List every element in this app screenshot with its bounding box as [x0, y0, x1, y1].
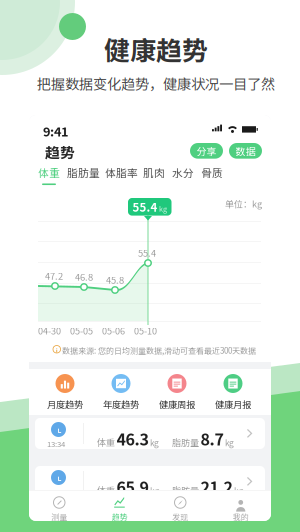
staticText: 分享 — [196, 144, 216, 158]
staticText: 体重 — [38, 165, 60, 180]
staticText: 把握数据变化趋势，健康状况一目了然 — [37, 73, 275, 94]
staticText: 09:12 — [47, 486, 65, 497]
button[interactable]: 年度趋势 — [93, 374, 149, 411]
staticText: kg — [225, 437, 234, 449]
staticText: 数据 — [235, 144, 255, 158]
staticText: 55.4 — [132, 198, 157, 215]
staticText: 46.3 — [116, 427, 148, 450]
staticText: 05-06 — [102, 324, 125, 337]
staticText: kg — [150, 437, 159, 449]
staticText: 骨质 — [201, 165, 223, 180]
staticText: 脂肪量 — [172, 435, 199, 448]
button[interactable]: 13:34 — [29, 418, 271, 449]
button[interactable]: 测量 — [29, 496, 89, 523]
staticText: 数据来源: 您的日均测量数据,滑动可查看最近300天数据 — [62, 344, 256, 356]
staticText: 测量 — [51, 511, 67, 523]
button[interactable]: 分享 — [190, 143, 223, 159]
staticText: 趋势 — [45, 141, 75, 162]
button[interactable]: 数据 — [229, 143, 262, 159]
staticText: 45.8 — [106, 273, 124, 286]
staticText: 发现 — [172, 511, 188, 523]
button[interactable]: 水分 — [172, 165, 194, 185]
button[interactable]: 肌肉 — [143, 165, 165, 185]
staticText: 健康周报 — [159, 397, 195, 411]
staticText: 脂肪量 — [172, 483, 199, 496]
staticText: 月度趋势 — [47, 397, 83, 411]
button[interactable]: 骨质 — [201, 165, 223, 185]
button[interactable]: 体脂率 — [105, 165, 138, 185]
button[interactable]: 09:12 — [29, 466, 271, 497]
button[interactable]: 我的 — [210, 496, 271, 523]
button[interactable]: 脂肪量 — [67, 165, 100, 185]
staticText: 健康月报 — [215, 397, 251, 411]
staticText: 8.7 — [200, 427, 223, 450]
staticText: 水分 — [172, 165, 194, 180]
staticText: 健康趋势 — [104, 30, 208, 68]
button[interactable]: 发现 — [150, 496, 210, 523]
button[interactable]: 健康月报 — [205, 374, 261, 411]
staticText: 肌肉 — [143, 165, 165, 180]
staticText: 脂肪量 — [67, 165, 100, 180]
staticText: 04-30 — [38, 324, 61, 337]
staticText: 体重 — [97, 435, 115, 448]
staticText: kg — [159, 203, 167, 214]
staticText: kn — [234, 485, 244, 497]
staticText: 我的 — [233, 511, 249, 523]
staticText: 9:41 — [43, 122, 68, 140]
button[interactable]: 趋势 — [89, 496, 150, 523]
staticText: 13:34 — [47, 438, 65, 449]
button[interactable]: 体重 — [38, 165, 60, 185]
staticText: 趋势 — [112, 511, 128, 523]
staticText: 体脂率 — [105, 165, 138, 180]
staticText: 21.2 — [200, 475, 232, 498]
staticText: 55.4 — [138, 246, 156, 259]
staticText: 05-05 — [70, 324, 93, 337]
button[interactable]: 月度趋势 — [37, 374, 93, 411]
staticText: 年度趋势 — [103, 397, 139, 411]
staticText: 05-10 — [134, 324, 157, 337]
staticText: 46.8 — [75, 270, 93, 283]
staticText: 体重 — [97, 483, 115, 496]
staticText: 47.2 — [45, 269, 63, 282]
staticText: 65.9 — [116, 475, 148, 498]
button[interactable]: 健康周报 — [149, 374, 205, 411]
staticText: kn — [150, 485, 160, 497]
staticText: 单位：kg — [225, 197, 262, 210]
